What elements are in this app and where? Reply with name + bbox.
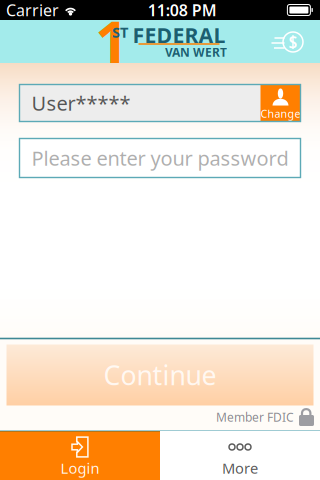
staticText: Carrier [6, 0, 59, 21]
staticText: User***** [31, 90, 130, 116]
button[interactable]: Quick balance [266, 20, 310, 62]
staticText: More [222, 458, 258, 478]
staticText: 1 [95, 2, 129, 80]
button[interactable]: Continue [6, 344, 313, 405]
staticText: Continue [103, 357, 216, 393]
staticText: FEDERAL [132, 21, 225, 49]
button[interactable]: More [160, 431, 320, 480]
staticText: Login [60, 458, 99, 478]
staticText: 11:08 PM [148, 0, 217, 21]
staticText: Change [260, 106, 300, 121]
staticText: Please enter your password [31, 145, 288, 171]
button[interactable]: Change user [260, 84, 300, 121]
button[interactable]: Login [0, 431, 160, 480]
staticText: VAN WERT [165, 44, 227, 60]
staticText: Member FDIC [216, 409, 294, 425]
staticText: ST [112, 22, 128, 42]
staticText: S [288, 31, 297, 53]
